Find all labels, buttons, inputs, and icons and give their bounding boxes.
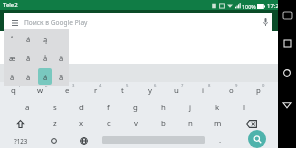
button[interactable]: i bbox=[190, 82, 217, 99]
staticText: p bbox=[256, 85, 261, 96]
button[interactable]: r bbox=[82, 82, 109, 99]
button[interactable]: s bbox=[41, 99, 68, 116]
staticText: j bbox=[189, 102, 192, 113]
staticText: k bbox=[215, 102, 220, 113]
button[interactable]: o bbox=[218, 82, 245, 99]
staticText: v bbox=[134, 118, 138, 129]
button[interactable]: u bbox=[163, 82, 190, 99]
staticText: á bbox=[26, 34, 31, 44]
button[interactable]: Home bbox=[282, 68, 292, 78]
staticText: w bbox=[37, 85, 44, 96]
staticText: z bbox=[53, 118, 57, 129]
button[interactable]: w bbox=[27, 82, 54, 99]
staticText: 9 bbox=[235, 83, 238, 89]
button[interactable]: ª bbox=[4, 29, 20, 48]
button[interactable]: l bbox=[231, 99, 258, 116]
button[interactable]: k bbox=[204, 99, 231, 116]
staticText: 7 bbox=[181, 83, 184, 89]
staticText: m bbox=[214, 118, 222, 129]
staticText: 5 bbox=[126, 83, 129, 89]
staticText: f bbox=[107, 102, 110, 113]
staticText: x bbox=[79, 118, 84, 129]
staticText: q bbox=[11, 85, 16, 96]
button[interactable]: v bbox=[122, 115, 149, 132]
button[interactable]: Back bbox=[282, 100, 292, 110]
staticText: c bbox=[107, 118, 111, 129]
button[interactable]: c bbox=[95, 115, 122, 132]
button[interactable]: Voice search bbox=[258, 15, 272, 29]
staticText: l bbox=[243, 102, 246, 113]
button[interactable]: m bbox=[204, 115, 231, 132]
button[interactable]: Shift bbox=[0, 115, 41, 132]
button[interactable]: h bbox=[150, 99, 177, 116]
button[interactable]: f bbox=[95, 99, 122, 116]
button[interactable]: q bbox=[0, 82, 27, 99]
button[interactable]: g bbox=[122, 99, 149, 116]
staticText: y bbox=[148, 85, 152, 96]
button[interactable]: y bbox=[136, 82, 163, 99]
staticText: â bbox=[10, 72, 15, 82]
staticText: 17:22 bbox=[267, 2, 283, 10]
staticText: ą bbox=[43, 34, 48, 44]
button[interactable]: à bbox=[20, 67, 36, 86]
staticText: ã bbox=[59, 72, 64, 82]
button[interactable]: á bbox=[38, 68, 52, 85]
button[interactable]: t bbox=[109, 82, 136, 99]
button[interactable]: j bbox=[177, 99, 204, 116]
button[interactable]: ā bbox=[20, 48, 36, 67]
staticText: 0 bbox=[262, 83, 265, 89]
staticText: á bbox=[43, 72, 48, 82]
button[interactable]: á bbox=[20, 29, 36, 48]
staticText: 2 bbox=[45, 83, 48, 89]
staticText: 4 bbox=[99, 83, 102, 89]
button[interactable]: ã bbox=[53, 67, 69, 86]
button[interactable]: ą bbox=[37, 29, 53, 48]
button[interactable]: Поиск в Google Play bbox=[4, 13, 272, 31]
button[interactable]: Screenshot bbox=[282, 10, 292, 20]
staticText: i bbox=[202, 85, 205, 96]
staticText: . bbox=[219, 135, 222, 146]
staticText: 6 bbox=[154, 83, 157, 89]
button[interactable]: x bbox=[68, 115, 95, 132]
button[interactable]: n bbox=[177, 115, 204, 132]
staticText: ª bbox=[11, 35, 13, 42]
button[interactable]: z bbox=[41, 115, 68, 132]
staticText: à bbox=[26, 72, 31, 82]
button[interactable]: â bbox=[4, 67, 20, 86]
staticText: 8 bbox=[208, 83, 211, 89]
button[interactable]: p bbox=[245, 82, 272, 99]
button[interactable]: Recent apps bbox=[282, 38, 292, 48]
staticText: 1 bbox=[18, 83, 21, 89]
staticText: u bbox=[174, 85, 179, 96]
button[interactable]: Emoji bbox=[42, 132, 66, 148]
staticText: å bbox=[43, 53, 48, 63]
staticText: r bbox=[94, 85, 98, 96]
staticText: b bbox=[161, 118, 166, 129]
staticText: ?123 bbox=[14, 137, 28, 145]
staticText: æ bbox=[9, 53, 16, 63]
button[interactable]: Change language bbox=[72, 132, 96, 148]
button[interactable]: . bbox=[208, 132, 232, 148]
staticText: n bbox=[188, 118, 193, 129]
button[interactable]: ?123 bbox=[0, 132, 42, 148]
staticText: h bbox=[161, 102, 166, 113]
staticText: e bbox=[65, 85, 70, 96]
button[interactable]: æ bbox=[4, 48, 20, 67]
button[interactable]: b bbox=[150, 115, 177, 132]
staticText: g bbox=[133, 102, 138, 113]
button[interactable]: Search bbox=[248, 130, 266, 148]
staticText: 3 bbox=[72, 83, 75, 89]
staticText: 100% bbox=[242, 3, 256, 10]
button[interactable]: a bbox=[14, 99, 41, 116]
button[interactable]: e bbox=[54, 82, 81, 99]
button[interactable]: ä bbox=[53, 48, 69, 67]
button[interactable]: d bbox=[68, 99, 95, 116]
staticText: d bbox=[79, 102, 84, 113]
button[interactable]: Backspace bbox=[231, 115, 272, 132]
staticText: Поиск в Google Play bbox=[24, 18, 88, 27]
staticText: t bbox=[121, 85, 124, 96]
staticText: s bbox=[53, 102, 57, 113]
button[interactable]: å bbox=[37, 48, 53, 67]
staticText: a bbox=[25, 102, 30, 113]
